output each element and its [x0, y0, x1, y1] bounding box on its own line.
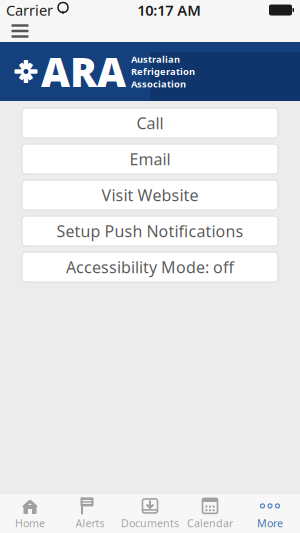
staticText: Home [15, 516, 45, 530]
button[interactable]: Home [0, 494, 60, 532]
staticText: Documents [121, 516, 179, 530]
staticText: Carrier [6, 0, 53, 20]
staticText: Calendar [187, 516, 233, 530]
staticText: 10:17 AM [137, 0, 201, 20]
button[interactable]: Visit Website [22, 180, 278, 210]
button[interactable]: Call [22, 108, 278, 138]
staticText: Australian [131, 53, 180, 65]
staticText: Association [131, 78, 186, 90]
button[interactable]: Calendar [180, 494, 240, 532]
staticText: More [257, 516, 283, 530]
button[interactable]: Documents [120, 494, 180, 532]
staticText: Call [136, 112, 163, 134]
button[interactable]: Setup Push Notifications [22, 216, 278, 246]
staticText: Setup Push Notifications [56, 220, 243, 242]
button[interactable]: More [240, 494, 300, 532]
button[interactable]: Email [22, 144, 278, 174]
staticText: ARA [41, 45, 126, 98]
button[interactable]: Alerts [60, 494, 120, 532]
staticText: Visit Website [101, 184, 198, 206]
staticText: Email [129, 148, 170, 170]
staticText: Accessibility Mode: off [66, 256, 234, 278]
button[interactable]: Accessibility Mode: off [22, 252, 278, 282]
staticText: Refrigeration [131, 65, 195, 78]
button[interactable]: Menu [2, 20, 38, 42]
staticText: Alerts [75, 516, 104, 530]
